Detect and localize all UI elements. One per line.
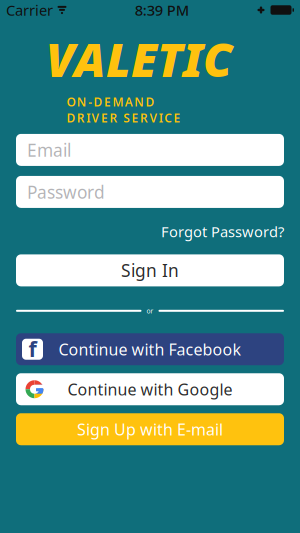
staticText: Carrier [6,0,53,20]
staticText: ON-DEMAND DRIVER SERVICE [66,94,211,126]
staticText: Continue with Google [67,379,232,400]
staticText: Sign Up with E-mail [77,419,223,440]
staticText: f [28,335,36,363]
staticText: VALETIC [46,28,232,90]
staticText: Continue with Facebook [58,339,241,360]
button[interactable]: Sign Up with E-mail [16,413,284,445]
button[interactable]: Continue with Google [16,373,284,405]
staticText: Password [27,180,105,203]
button[interactable]: Forgot Password? [153,217,284,246]
staticText: Email [27,138,71,161]
staticText: Forgot Password? [161,222,284,241]
button[interactable]: Continue with Facebook [16,333,284,365]
staticText: 8:39 PM [135,0,189,20]
staticText: Sign In [121,259,179,282]
button[interactable]: Sign In [16,254,284,286]
staticText: or [146,306,153,315]
